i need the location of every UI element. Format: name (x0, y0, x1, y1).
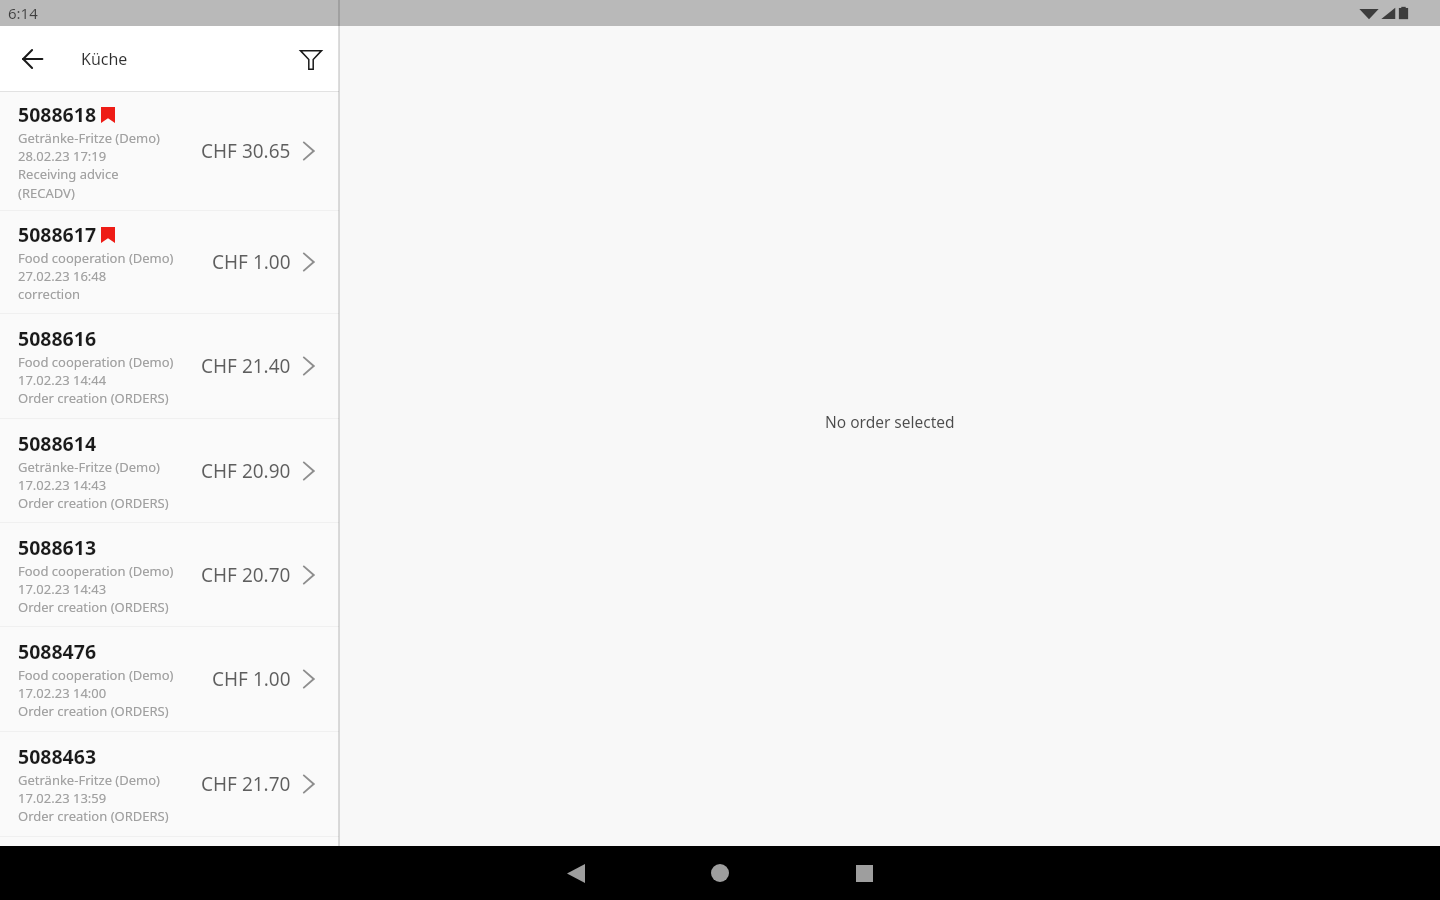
staticText: 17.02.23 13:59 (18, 789, 107, 807)
button[interactable]: Back (0, 26, 64, 91)
staticText: 27.02.23 16:48 (18, 267, 107, 285)
button[interactable]: 5088618 (0, 92, 339, 210)
staticText: Getränke-Fritze (Demo) (18, 771, 161, 789)
staticText: 5088476 (18, 638, 97, 665)
staticText: Order creation (ORDERS) (18, 389, 169, 407)
staticText: CHF 20.90 (201, 458, 291, 484)
button[interactable]: 5088614 (0, 419, 339, 522)
staticText: Food cooperation (Demo) (18, 353, 174, 371)
staticText: No order selected (825, 411, 955, 432)
button[interactable]: Filter (283, 26, 339, 91)
staticText: Order creation (ORDERS) (18, 807, 169, 825)
staticText: 5088614 (18, 430, 97, 457)
staticText: 17.02.23 14:00 (18, 684, 107, 702)
staticText: 5088613 (18, 534, 97, 561)
staticText: CHF 1.00 (212, 666, 291, 692)
staticText: 17.02.23 14:43 (18, 580, 107, 598)
staticText: Food cooperation (Demo) (18, 249, 174, 267)
staticText: Order creation (ORDERS) (18, 494, 169, 512)
staticText: 17.02.23 14:43 (18, 476, 107, 494)
staticText: CHF 30.65 (201, 138, 291, 164)
button[interactable]: Back (504, 846, 648, 900)
staticText: Food cooperation (Demo) (18, 562, 174, 580)
staticText: Order creation (ORDERS) (18, 702, 169, 720)
button[interactable]: 5088617 (0, 211, 339, 313)
staticText: 5088616 (18, 325, 97, 352)
button[interactable]: Recents (792, 846, 936, 900)
staticText: Getränke-Fritze (Demo) (18, 129, 161, 147)
staticText: Küche (81, 48, 128, 70)
staticText: 6:14 (8, 3, 38, 23)
staticText: correction (18, 285, 81, 303)
staticText: CHF 20.70 (201, 562, 291, 588)
button[interactable]: 5088616 (0, 314, 339, 418)
staticText: 5088617 (18, 221, 97, 248)
button[interactable]: 5088463 (0, 732, 339, 836)
staticText: 5088463 (18, 743, 97, 770)
staticText: 28.02.23 17:19 (18, 147, 107, 165)
staticText: 17.02.23 14:44 (18, 371, 107, 389)
staticText: CHF 1.00 (212, 249, 291, 275)
staticText: Order creation (ORDERS) (18, 598, 169, 616)
staticText: CHF 21.70 (201, 771, 291, 797)
button[interactable]: 5088613 (0, 523, 339, 626)
staticText: Getränke-Fritze (Demo) (18, 458, 161, 476)
staticText: CHF 21.40 (201, 353, 291, 379)
button[interactable]: Home (648, 846, 792, 900)
button[interactable]: 5088476 (0, 627, 339, 731)
staticText: 5088618 (18, 101, 97, 128)
staticText: Receiving advice (RECADV) (18, 165, 119, 201)
staticText: Food cooperation (Demo) (18, 666, 174, 684)
